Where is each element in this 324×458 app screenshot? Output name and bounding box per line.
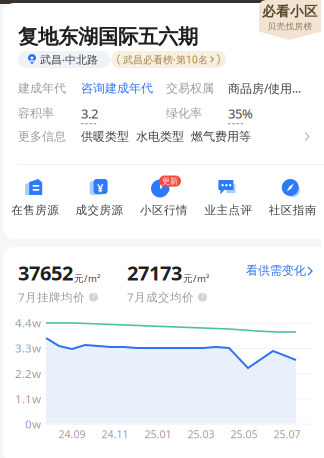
staticText: 37652 [18, 259, 73, 286]
staticText: 看供需变化 [246, 263, 306, 278]
staticText: 2.2w [15, 366, 41, 381]
staticText: 建成年代 [18, 81, 66, 96]
staticText: 贝壳找房榜 [267, 21, 312, 32]
staticText: 24.09 [58, 427, 85, 441]
button[interactable]: 更新 [132, 175, 196, 213]
staticText: 武昌必看榜·第10名 [123, 53, 208, 66]
staticText: 小区行情 [140, 203, 188, 217]
staticText: 元/m² [183, 272, 209, 285]
staticText: 35% [228, 104, 253, 122]
staticText: 咨询建成年代 [81, 81, 153, 96]
staticText: 燃气费用等 [191, 129, 251, 144]
staticText: 7月成交均价 [127, 289, 194, 305]
button[interactable]: 业主点评 [196, 175, 261, 213]
button[interactable]: 武昌·中北路 [18, 51, 110, 68]
staticText: 25.03 [187, 427, 214, 441]
staticText: 3.2 [81, 104, 98, 122]
staticText: 3.3w [15, 340, 41, 356]
staticText: 业主点评 [204, 203, 252, 217]
staticText: 必看小区 [262, 3, 318, 20]
staticText: 1.1w [15, 391, 41, 407]
staticText: 容积率 [18, 106, 54, 121]
staticText: 0w [25, 416, 41, 432]
staticText: 水电类型 [136, 129, 184, 144]
button[interactable]: 看供需变化 [246, 263, 314, 278]
staticText: ? [92, 291, 95, 302]
button[interactable]: 武昌必看榜·第10名 [111, 51, 226, 68]
staticText: 复地东湖国际五六期 [18, 24, 198, 49]
staticText: 商品房/使用... [228, 80, 301, 96]
staticText: 供暖类型 [81, 129, 129, 144]
staticText: 在售房源 [11, 203, 59, 217]
staticText: 27173 [127, 259, 182, 286]
staticText: 更新 [162, 176, 178, 186]
staticText: 绿化率 [166, 106, 202, 121]
staticText: 交易权属 [166, 81, 214, 96]
staticText: ? [201, 291, 204, 302]
staticText: 元/m² [74, 272, 100, 285]
staticText: ¥ [97, 180, 103, 195]
button[interactable]: ¥ [67, 175, 132, 213]
staticText: 24.11 [101, 427, 128, 441]
staticText: 4.4w [15, 315, 41, 331]
staticText: 25.01 [144, 427, 171, 441]
staticText: 更多信息 [18, 129, 66, 144]
staticText: 社区指南 [269, 203, 317, 217]
staticText: 7月挂牌均价 [18, 289, 85, 305]
button[interactable]: 社区指南 [261, 175, 324, 213]
staticText: 25.05 [230, 427, 257, 441]
staticText: 25.07 [273, 427, 300, 441]
button[interactable]: 在售房源 [3, 175, 67, 213]
staticText: 成交房源 [76, 203, 124, 217]
staticText: 武昌·中北路 [40, 52, 98, 67]
